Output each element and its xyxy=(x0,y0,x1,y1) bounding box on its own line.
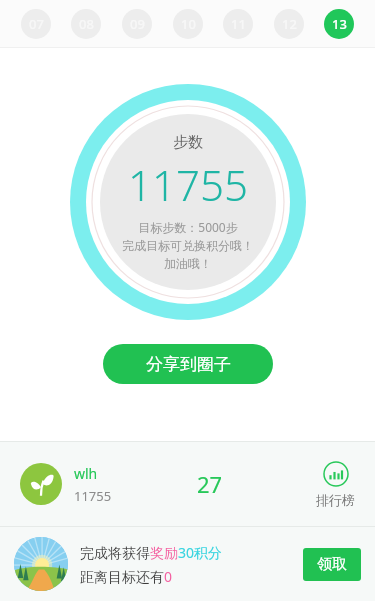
staticText: wlh xyxy=(74,464,98,483)
staticText: 11755 xyxy=(74,487,112,505)
staticText: 距离目标还有0 xyxy=(80,567,173,586)
staticText: 排行榜 xyxy=(316,492,355,508)
staticText: 12 xyxy=(282,15,297,33)
staticText: 09 xyxy=(130,15,145,33)
button[interactable]: 分享到圈子 xyxy=(103,344,273,384)
button[interactable]: 10 xyxy=(173,9,203,39)
button[interactable]: 09 xyxy=(122,9,152,39)
staticText: 27 xyxy=(197,469,223,499)
staticText: 07 xyxy=(29,15,44,33)
staticText: 加油哦！ xyxy=(164,256,212,271)
button[interactable]: 12 xyxy=(274,9,304,39)
button[interactable]: 排行榜 xyxy=(316,461,355,508)
staticText: 目标步数：5000步 xyxy=(138,219,238,235)
staticText: 11755 xyxy=(128,156,248,213)
staticText: 完成目标可兑换积分哦！ xyxy=(122,238,254,253)
staticText: 领取 xyxy=(317,555,347,574)
button[interactable]: 07 xyxy=(21,9,51,39)
staticText: 步数 xyxy=(173,133,203,152)
staticText: 完成将获得奖励30积分 xyxy=(80,543,223,562)
button[interactable]: 11 xyxy=(223,9,253,39)
staticText: 分享到圈子 xyxy=(146,354,231,375)
staticText: 10 xyxy=(181,15,196,33)
button[interactable]: 13 xyxy=(324,9,354,39)
button[interactable]: 08 xyxy=(71,9,101,39)
staticText: 08 xyxy=(79,15,94,33)
button[interactable]: wlh xyxy=(0,442,375,526)
staticText: 13 xyxy=(332,15,347,33)
button[interactable]: 领取 xyxy=(303,548,361,581)
staticText: 11 xyxy=(231,15,246,33)
